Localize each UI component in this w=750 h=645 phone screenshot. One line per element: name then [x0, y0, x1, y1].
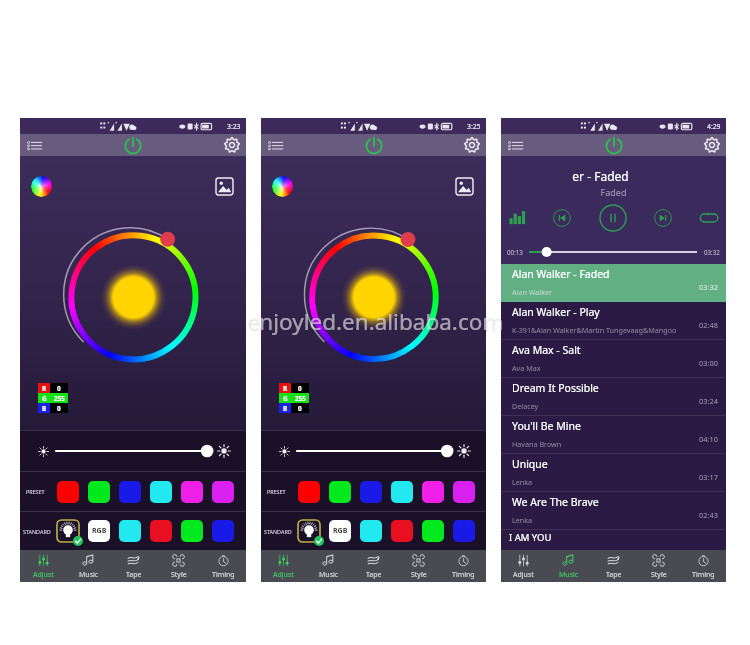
- button[interactable]: [88, 481, 110, 503]
- button[interactable]: [453, 520, 475, 542]
- staticText: Adjust: [273, 570, 294, 580]
- button[interactable]: Alan Walker - Play: [501, 302, 726, 340]
- staticText: I AM YOU: [509, 531, 552, 544]
- button[interactable]: Dim: [279, 446, 290, 457]
- button[interactable]: We Are The Brave: [501, 492, 726, 530]
- button[interactable]: Timing: [441, 550, 486, 582]
- button[interactable]: [391, 481, 413, 503]
- button[interactable]: Tape: [591, 550, 636, 582]
- staticText: B: [42, 404, 47, 413]
- button[interactable]: [453, 481, 475, 503]
- button[interactable]: You'll Be Mine: [501, 416, 726, 454]
- button[interactable]: Settings: [224, 137, 240, 153]
- button[interactable]: Menu: [27, 137, 44, 154]
- button[interactable]: Music: [306, 550, 351, 582]
- staticText: Delacey: [512, 401, 539, 411]
- staticText: Alan Walker - Play: [512, 305, 600, 319]
- button[interactable]: RGB: [88, 520, 110, 542]
- button[interactable]: Adjust: [261, 550, 306, 582]
- staticText: 0: [298, 384, 302, 393]
- button[interactable]: Brighten: [217, 444, 231, 458]
- staticText: Music: [79, 570, 99, 580]
- staticText: Lenka: [512, 515, 533, 525]
- button[interactable]: [298, 481, 320, 503]
- button[interactable]: [212, 520, 234, 542]
- staticText: Music: [319, 570, 339, 580]
- button[interactable]: Style: [396, 550, 441, 582]
- button[interactable]: Power: [604, 135, 624, 155]
- button[interactable]: Pause: [599, 204, 627, 232]
- staticText: Adjust: [33, 570, 54, 580]
- button[interactable]: RGB: [329, 520, 351, 542]
- button[interactable]: Dim: [38, 446, 49, 457]
- button[interactable]: Timing: [201, 550, 246, 582]
- button[interactable]: Power: [364, 135, 384, 155]
- button[interactable]: Alan Walker - Faded: [501, 264, 726, 302]
- button[interactable]: Music: [66, 550, 111, 582]
- button[interactable]: Color picker: [31, 176, 52, 197]
- staticText: er - Faded: [488, 168, 713, 184]
- staticText: Ava Max - Salt: [512, 343, 581, 357]
- staticText: Ava Max: [512, 363, 541, 373]
- staticText: 00:13: [507, 248, 523, 256]
- button[interactable]: [181, 481, 203, 503]
- button[interactable]: Previous: [553, 209, 571, 227]
- button[interactable]: Ava Max - Salt: [501, 340, 726, 378]
- staticText: 03:00: [699, 358, 718, 368]
- button[interactable]: [422, 481, 444, 503]
- staticText: Timing: [212, 570, 235, 580]
- button[interactable]: [212, 481, 234, 503]
- button[interactable]: [422, 520, 444, 542]
- staticText: 04:10: [699, 434, 718, 444]
- button[interactable]: Pick image: [456, 178, 473, 195]
- button[interactable]: Next: [654, 209, 672, 227]
- button[interactable]: Music: [546, 550, 591, 582]
- button[interactable]: Unique: [501, 454, 726, 492]
- button[interactable]: [297, 444, 451, 458]
- button[interactable]: [119, 481, 141, 503]
- staticText: 03:32: [699, 282, 718, 292]
- button[interactable]: Style: [156, 550, 201, 582]
- button[interactable]: Repeat: [699, 208, 719, 228]
- staticText: Havana Brown: [512, 439, 562, 449]
- staticText: Alan Walker: [512, 287, 553, 297]
- button[interactable]: [360, 481, 382, 503]
- button[interactable]: Brighten: [457, 444, 471, 458]
- button[interactable]: [150, 520, 172, 542]
- button[interactable]: Settings: [464, 137, 480, 153]
- button[interactable]: [57, 481, 79, 503]
- button[interactable]: Power: [123, 135, 143, 155]
- button[interactable]: Menu: [268, 137, 285, 154]
- staticText: RGB: [333, 526, 348, 536]
- button[interactable]: Adjust: [20, 550, 66, 582]
- button[interactable]: Tape: [351, 550, 396, 582]
- button[interactable]: Style: [636, 550, 681, 582]
- button[interactable]: Tape: [111, 550, 156, 582]
- button[interactable]: Dream It Possible: [501, 378, 726, 416]
- button[interactable]: [181, 520, 203, 542]
- staticText: R: [42, 384, 47, 393]
- button[interactable]: [391, 520, 413, 542]
- button[interactable]: Bulb: [298, 520, 320, 542]
- staticText: Timing: [692, 570, 715, 580]
- button[interactable]: Color picker: [272, 176, 293, 197]
- button[interactable]: [56, 444, 211, 458]
- button[interactable]: [119, 520, 141, 542]
- button[interactable]: Adjust: [501, 550, 546, 582]
- button[interactable]: Timing: [681, 550, 726, 582]
- button[interactable]: [529, 246, 697, 258]
- button[interactable]: Settings: [704, 137, 720, 153]
- staticText: 4:29: [707, 122, 721, 131]
- button[interactable]: [329, 481, 351, 503]
- staticText: PRESET: [267, 488, 286, 495]
- staticText: K-391&Alan Walker&Martin Tungevaag&Mango…: [512, 325, 677, 335]
- button[interactable]: Menu: [508, 137, 525, 154]
- staticText: STANDARD: [23, 528, 51, 535]
- button[interactable]: Bulb: [57, 520, 79, 542]
- staticText: STANDARD: [264, 528, 292, 535]
- button[interactable]: Equalizer: [508, 209, 526, 227]
- button[interactable]: [360, 520, 382, 542]
- button[interactable]: Pick image: [216, 178, 233, 195]
- button[interactable]: [150, 481, 172, 503]
- staticText: Tape: [366, 570, 382, 580]
